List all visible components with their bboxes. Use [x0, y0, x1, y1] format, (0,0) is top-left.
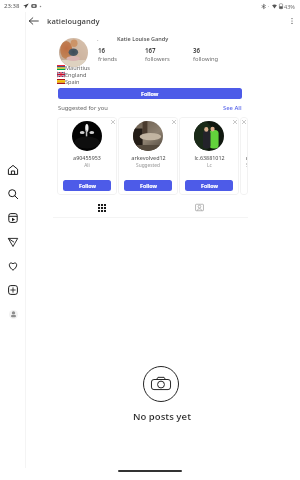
staticText: Follow — [79, 182, 96, 189]
staticText: Ali — [84, 162, 90, 169]
staticText: Spain — [65, 78, 80, 85]
staticText: 43% — [284, 3, 295, 10]
button[interactable]: More options — [283, 12, 300, 29]
staticText: No posts yet — [133, 410, 191, 423]
staticText: England — [65, 71, 87, 78]
staticText: Suggested — [136, 162, 160, 169]
staticText: lc.63881012 — [194, 154, 225, 161]
button[interactable]: Profile — [1, 302, 25, 326]
button[interactable]: Create — [1, 278, 25, 302]
button[interactable]: Tagged posts — [150, 198, 248, 217]
button[interactable]: Dismiss suggestion — [230, 117, 239, 126]
button[interactable]: arkevolved12 — [118, 117, 178, 195]
staticText: a90455953 — [73, 154, 101, 161]
button[interactable]: Likes — [1, 254, 25, 278]
staticText: 167 — [145, 46, 156, 54]
staticText: · — [268, 3, 270, 10]
button[interactable]: 36 — [193, 46, 241, 63]
staticText: Follow — [140, 182, 157, 189]
button[interactable]: lc.63881012 — [179, 117, 239, 195]
staticText: 23:38 — [4, 2, 20, 10]
button[interactable]: Messages — [1, 230, 25, 254]
button[interactable]: See All — [223, 104, 242, 112]
staticText: following — [193, 55, 219, 63]
staticText: Katie Louise Gandy — [117, 35, 169, 42]
button[interactable]: Search — [1, 182, 25, 206]
staticText: Follow — [201, 182, 218, 189]
staticText: See All — [223, 104, 242, 112]
button[interactable]: Reels — [1, 206, 25, 230]
button[interactable]: Profile picture — [59, 38, 88, 67]
button[interactable]: Home — [1, 158, 25, 182]
staticText: katielougandy — [47, 16, 100, 26]
button[interactable]: 16 — [98, 46, 145, 63]
staticText: 36 — [193, 46, 201, 54]
button[interactable]: Dismiss suggestion — [240, 117, 248, 126]
staticText: followers — [145, 55, 170, 63]
button[interactable]: Follow — [58, 88, 242, 99]
staticText: Lc — [207, 162, 212, 169]
button[interactable]: Follow — [185, 180, 233, 191]
staticText: · — [97, 36, 99, 44]
button[interactable]: Posts grid — [53, 198, 150, 217]
button[interactable]: Follow — [63, 180, 111, 191]
staticText: friends — [98, 55, 118, 63]
staticText: Follow — [141, 90, 159, 97]
staticText: 16 — [98, 46, 106, 54]
button[interactable]: Follow — [124, 180, 172, 191]
staticText: Mauritius — [65, 64, 91, 71]
button[interactable]: 167 — [145, 46, 193, 63]
staticText: arkevolved12 — [131, 154, 166, 161]
button[interactable]: a90455953 — [57, 117, 117, 195]
button[interactable]: Dismiss suggestion — [169, 117, 178, 126]
button[interactable]: Dismiss suggestion — [108, 117, 117, 126]
staticText: Suggested for you — [58, 104, 108, 112]
button[interactable]: ryan_b — [240, 117, 248, 195]
button[interactable]: Back — [25, 12, 42, 29]
